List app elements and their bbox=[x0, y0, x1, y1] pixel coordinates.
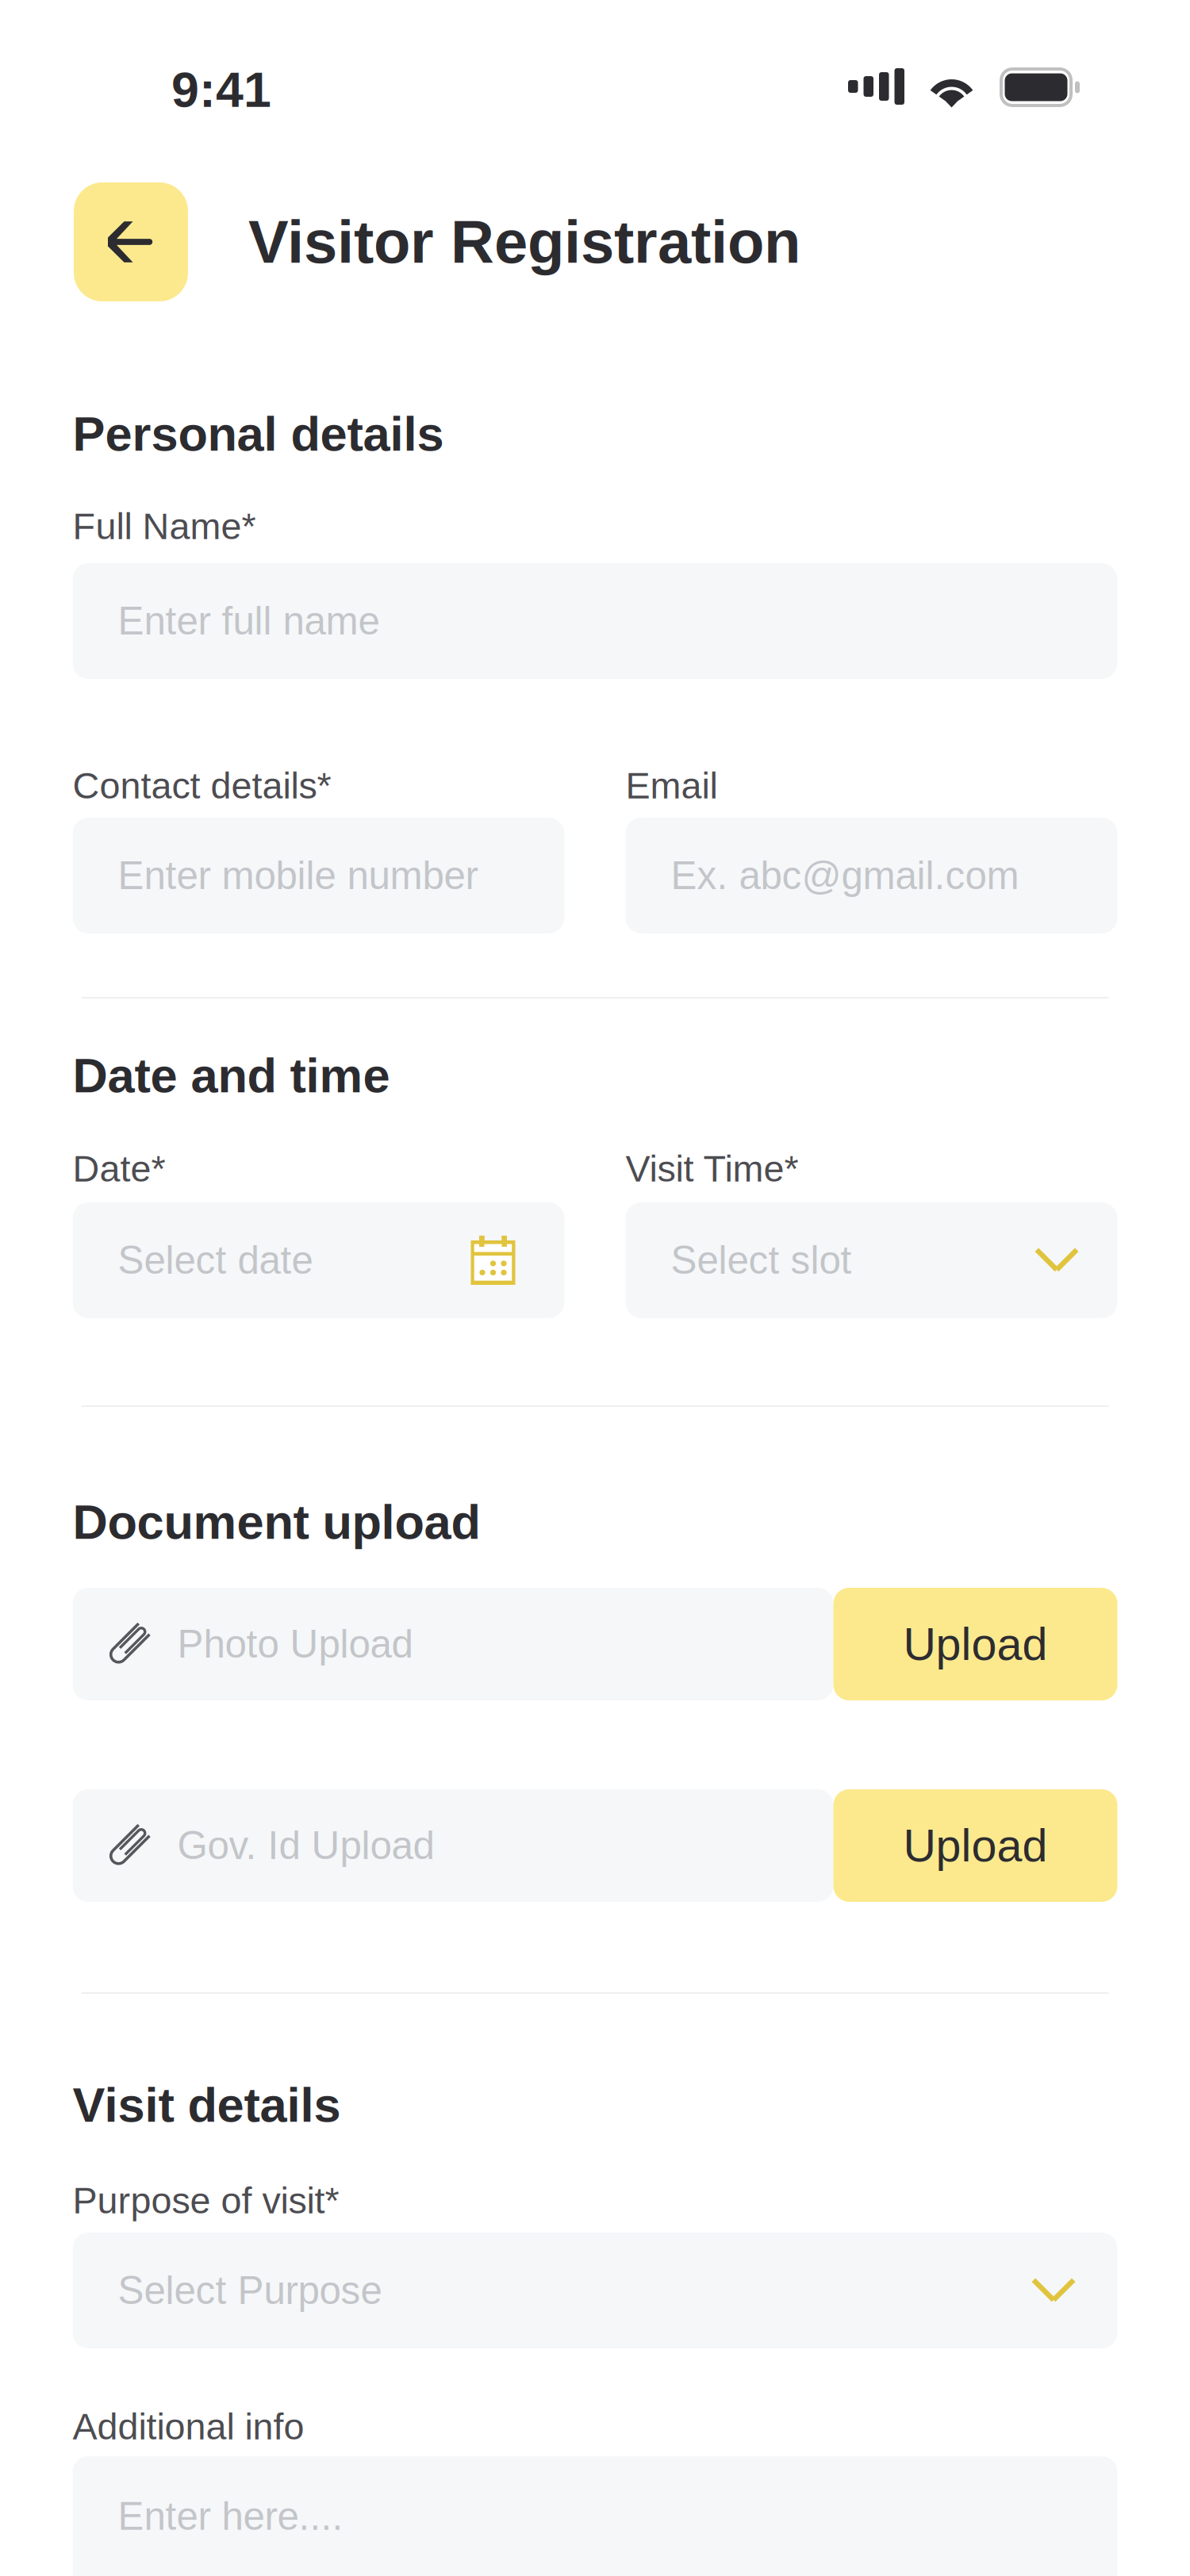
button[interactable]: Back bbox=[74, 182, 188, 301]
staticText: Document upload bbox=[73, 1495, 480, 1549]
button[interactable]: Select Purpose bbox=[73, 2233, 1117, 2348]
staticText: Email bbox=[626, 765, 718, 806]
staticText: 9:41 bbox=[171, 62, 271, 117]
staticText: Full Name* bbox=[73, 506, 256, 547]
button[interactable]: Upload bbox=[833, 1588, 1117, 1700]
staticText: Visitor Registration bbox=[248, 208, 800, 276]
staticText: Ex. abc@gmail.com bbox=[671, 854, 1019, 897]
staticText: Upload bbox=[903, 1820, 1048, 1871]
button[interactable]: Upload bbox=[833, 1789, 1117, 1902]
staticText: Select Purpose bbox=[118, 2269, 382, 2312]
staticText: Additional info bbox=[73, 2406, 304, 2447]
staticText: Enter full name bbox=[118, 599, 380, 643]
button[interactable]: Select slot bbox=[626, 1202, 1117, 1318]
staticText: Date and time bbox=[73, 1048, 390, 1103]
staticText: Personal details bbox=[73, 407, 444, 461]
staticText: Visit details bbox=[73, 2078, 341, 2132]
staticText: Select slot bbox=[671, 1238, 852, 1282]
button[interactable]: Select date bbox=[73, 1202, 564, 1318]
staticText: Enter here.... bbox=[118, 2494, 343, 2538]
staticText: Date* bbox=[73, 1148, 165, 1189]
staticText: Contact details* bbox=[73, 765, 331, 806]
staticText: Select date bbox=[118, 1238, 313, 1282]
staticText: Photo Upload bbox=[177, 1622, 413, 1666]
staticText: Gov. Id Upload bbox=[177, 1824, 434, 1867]
staticText: Visit Time* bbox=[626, 1148, 798, 1189]
staticText: Upload bbox=[903, 1619, 1048, 1670]
staticText: Purpose of visit* bbox=[73, 2180, 339, 2221]
staticText: Enter mobile number bbox=[118, 854, 478, 897]
